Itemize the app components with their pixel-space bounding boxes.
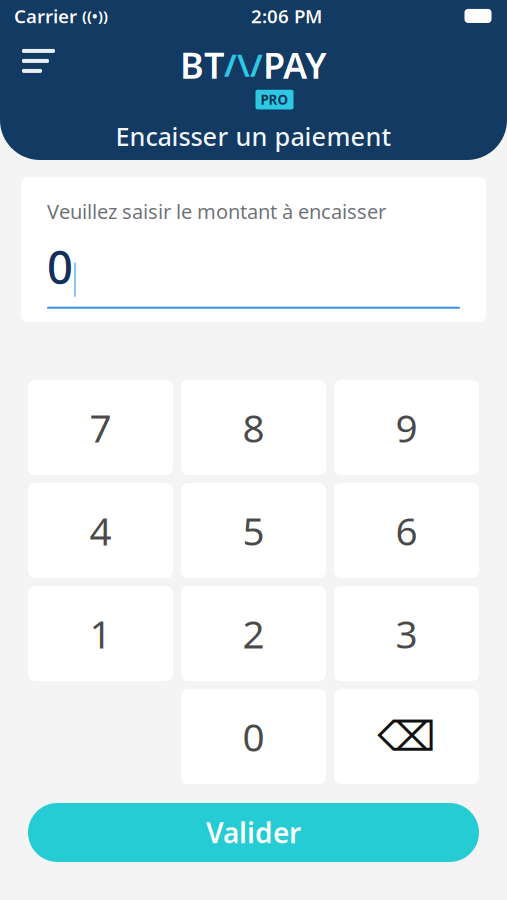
button[interactable]: Menu	[0, 27, 71, 89]
staticText: PRO	[260, 91, 288, 108]
button[interactable]: 3	[334, 586, 479, 681]
button[interactable]: 8	[181, 380, 326, 475]
button[interactable]: 7	[28, 380, 173, 475]
staticText: /\/	[224, 44, 263, 85]
staticText: Valider	[206, 814, 301, 851]
button[interactable]: 5	[181, 483, 326, 578]
button[interactable]: 4	[28, 483, 173, 578]
staticText: 1	[89, 608, 111, 659]
staticText: Encaisser un paiement	[115, 119, 391, 153]
staticText: 7	[89, 402, 111, 453]
button[interactable]: 9	[334, 380, 479, 475]
button[interactable]: 0	[181, 689, 326, 784]
staticText: BT	[180, 41, 224, 89]
staticText: 6	[395, 505, 417, 556]
staticText: 0	[47, 237, 73, 297]
staticText: 5	[242, 505, 264, 556]
staticText: 9	[395, 402, 417, 453]
staticText: ⌫	[377, 713, 435, 760]
staticText: PAY	[263, 41, 327, 89]
staticText: Veuillez saisir le montant à encaisser	[47, 198, 386, 225]
staticText: 2	[242, 608, 264, 659]
staticText: 3	[395, 608, 417, 659]
button[interactable]: 6	[334, 483, 479, 578]
button[interactable]: 2	[181, 586, 326, 681]
button[interactable]: 1	[28, 586, 173, 681]
staticText: Carrier	[14, 3, 77, 28]
staticText: 8	[242, 402, 264, 453]
staticText: 2:06 PM	[251, 3, 322, 28]
staticText: ((•))	[82, 6, 108, 26]
staticText: 0	[242, 711, 264, 762]
button[interactable]: Supprimer	[334, 689, 479, 784]
button[interactable]: Valider	[28, 803, 479, 862]
staticText: 4	[89, 505, 111, 556]
